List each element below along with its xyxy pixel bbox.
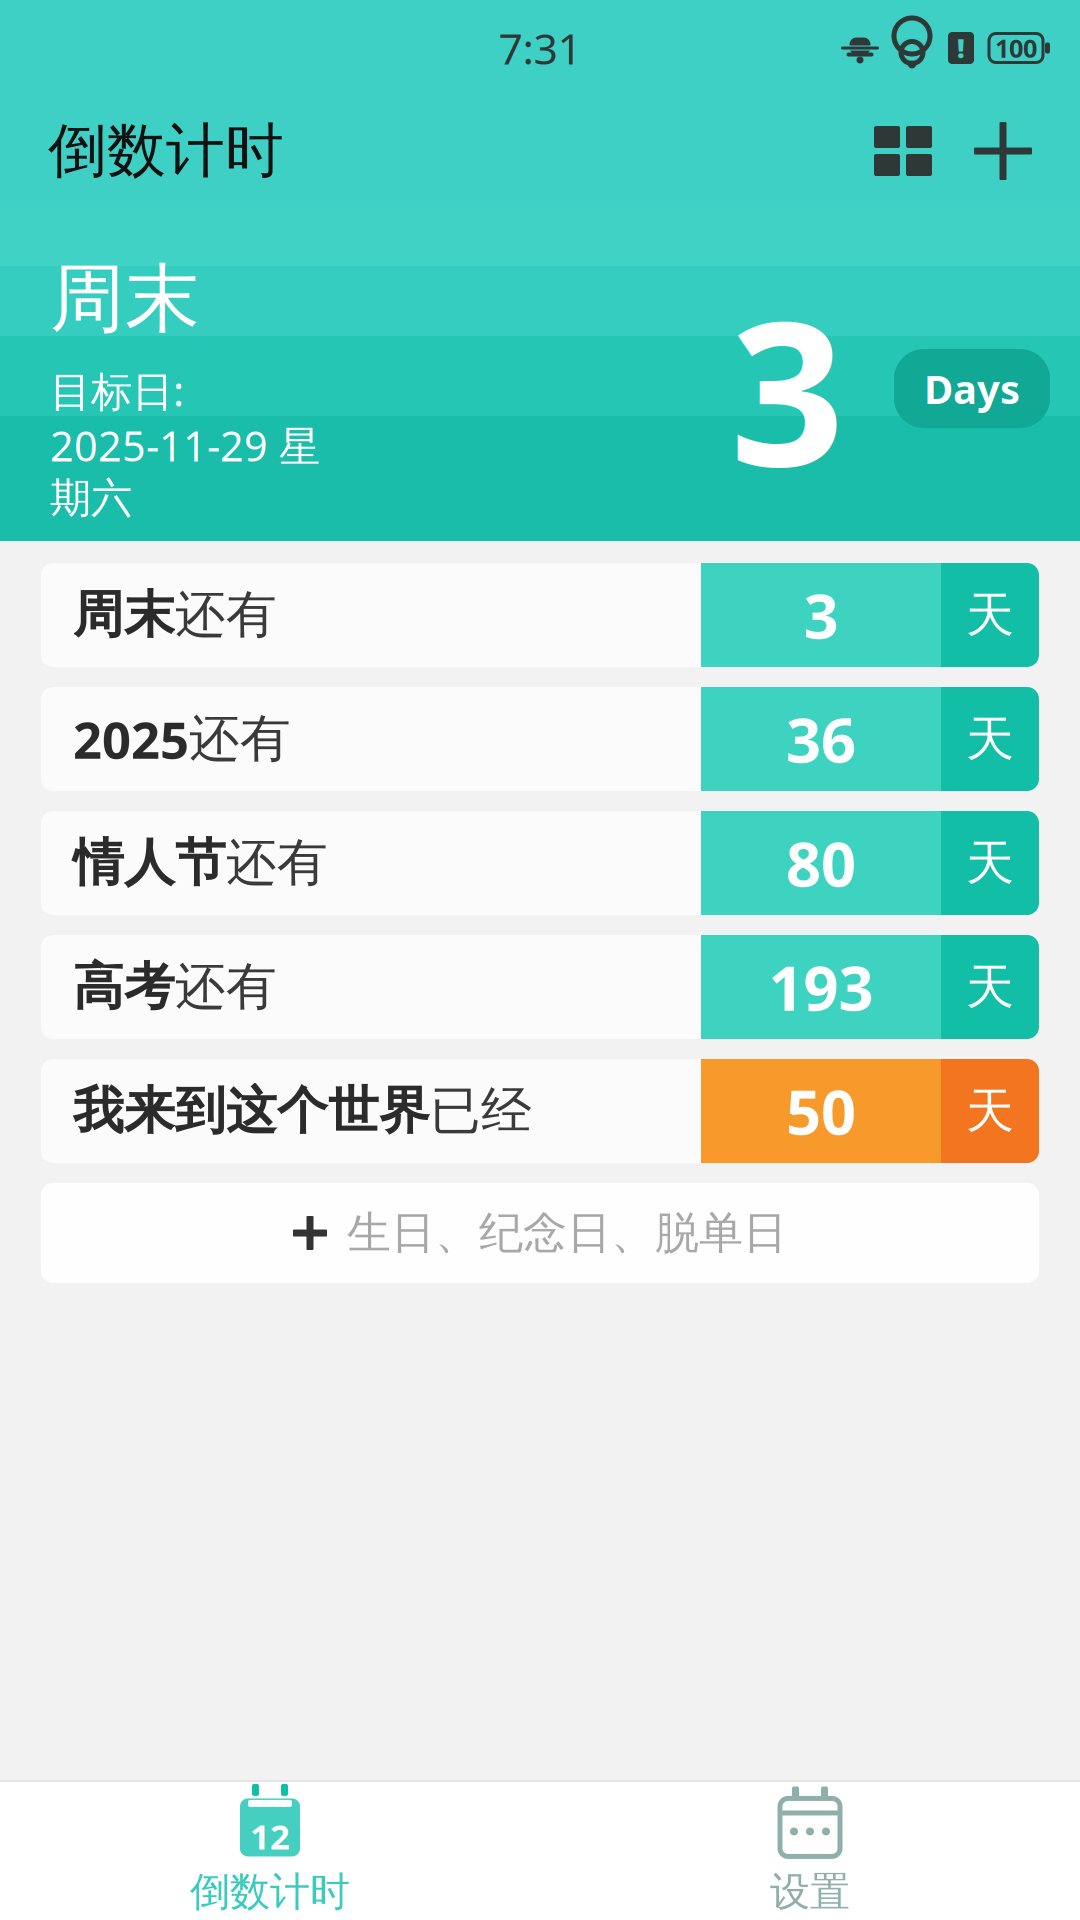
staticText: 天: [966, 1081, 1014, 1140]
staticText: 天: [966, 957, 1014, 1016]
button[interactable]: 情人节: [41, 811, 1039, 915]
staticText: 还有: [175, 956, 277, 1018]
button[interactable]: 12: [0, 1782, 540, 1920]
staticText: 100: [995, 31, 1037, 65]
staticText: 目标日: 2025-11-29 星期六: [50, 363, 320, 524]
staticText: 倒数计时: [190, 1867, 350, 1916]
button[interactable]: 2025: [41, 687, 1039, 791]
staticText: 天: [966, 709, 1014, 768]
staticText: 周末: [73, 584, 175, 646]
button[interactable]: 高考: [41, 935, 1039, 1039]
staticText: 周末: [50, 253, 200, 345]
staticText: 2025: [73, 705, 189, 773]
staticText: 天: [966, 833, 1014, 892]
staticText: 12: [250, 1813, 290, 1859]
staticText: 倒数计时: [48, 115, 284, 187]
staticText: 我来到这个世界: [73, 1080, 430, 1142]
staticText: !: [957, 30, 965, 66]
staticText: 3: [803, 574, 838, 656]
staticText: 7:31: [498, 20, 581, 76]
staticText: 生日、纪念日、脱单日: [347, 1206, 787, 1260]
staticText: 50: [786, 1070, 856, 1152]
staticText: 80: [786, 822, 856, 904]
staticText: 36: [786, 698, 856, 780]
button[interactable]: 周末: [41, 563, 1039, 667]
staticText: 还有: [226, 832, 328, 894]
staticText: 3: [730, 256, 844, 521]
button[interactable]: 周末: [0, 206, 1080, 541]
staticText: Days: [924, 362, 1020, 415]
button[interactable]: Grid view: [856, 108, 950, 194]
button[interactable]: 生日、纪念日、脱单日: [41, 1183, 1039, 1283]
staticText: 设置: [770, 1867, 850, 1916]
staticText: 情人节: [73, 832, 226, 894]
staticText: 天: [966, 585, 1014, 644]
staticText: 还有: [175, 584, 277, 646]
button[interactable]: Add countdown: [950, 116, 1056, 186]
button[interactable]: 设置: [540, 1782, 1080, 1920]
staticText: 193: [768, 946, 873, 1028]
staticText: 还有: [189, 708, 291, 770]
button[interactable]: 我来到这个世界: [41, 1059, 1039, 1163]
staticText: 已经: [430, 1080, 532, 1142]
staticText: 高考: [73, 956, 175, 1018]
